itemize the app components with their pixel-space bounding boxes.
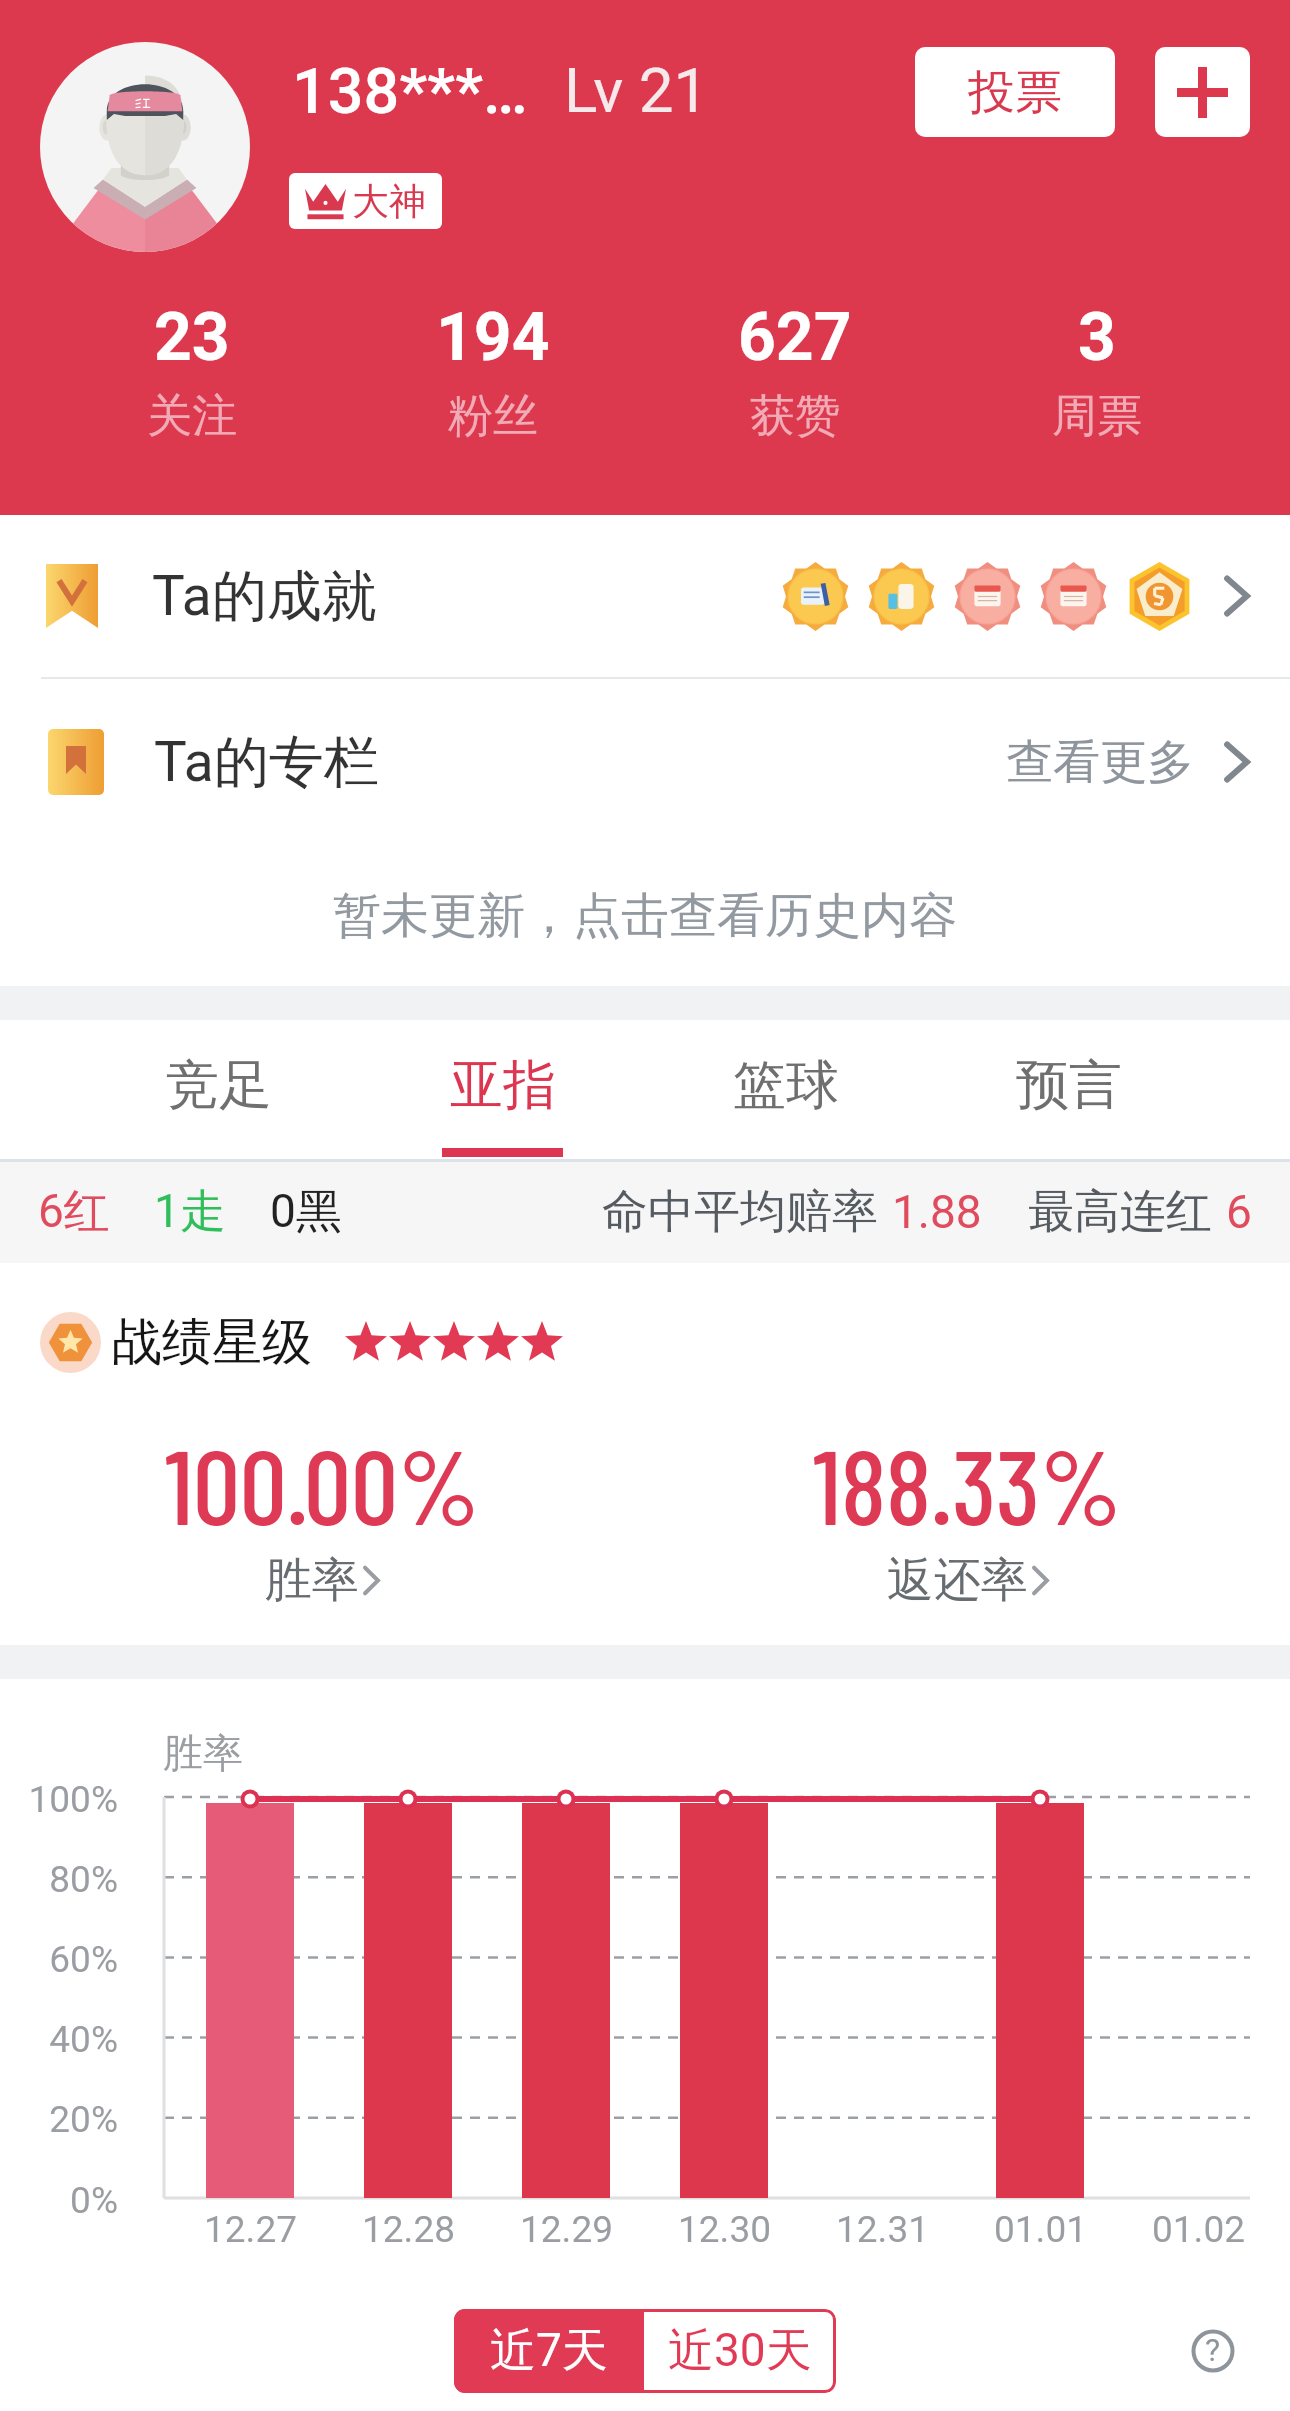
staticText: 1.88 [892,1185,982,1239]
staticText: ? [1205,2331,1221,2369]
button[interactable]: 近30天 [644,2309,836,2393]
staticText: Ta的成就 [152,562,377,631]
button[interactable]: 亚指 [361,1020,644,1160]
staticText: 最高连红 [1028,1183,1212,1241]
staticText: 194 [436,299,550,376]
staticText: 近30天 [668,2322,812,2380]
button[interactable]: 预言 [927,1020,1210,1160]
staticText: 100.00% [165,1420,480,1546]
staticText: Ta的专栏 [154,728,379,797]
staticText: 大神 [352,178,426,225]
staticText: 40% [49,2018,118,2061]
button[interactable]: 3 [946,299,1248,445]
button[interactable]: Add [1155,47,1250,137]
staticText: 60% [49,1938,118,1981]
staticText: 篮球 [733,1052,839,1119]
staticText: 12.31 [836,2208,929,2251]
staticText: 近7天 [490,2322,608,2380]
staticText: 暂未更新，点击查看历史内容 [333,886,957,946]
staticText: 亚指 [450,1052,556,1119]
staticText: 胜率 [163,1728,243,1778]
staticText: 周票 [1052,388,1142,445]
staticText: 12.27 [204,2208,297,2251]
staticText: 01.02 [1152,2208,1245,2251]
staticText: 138***… [292,55,528,129]
staticText: 战绩星级 [112,1311,312,1374]
button[interactable]: Ta的专栏 [0,679,1290,845]
staticText: 12.30 [678,2208,771,2251]
staticText: 投票 [968,63,1062,122]
staticText: 6 [1226,1185,1252,1239]
button[interactable]: 近7天 [454,2309,644,2393]
staticText: 12.28 [362,2208,455,2251]
button[interactable]: Ta的成就 [0,515,1290,677]
staticText: 命中平均赔率 [602,1183,878,1241]
button[interactable]: 战绩星级 [0,1263,1290,1400]
staticText: 胜率 [265,1551,359,1610]
staticText: 80% [49,1858,118,1901]
staticText: 3 [1078,299,1116,376]
staticText: 竞足 [166,1052,272,1119]
button[interactable]: Avatar [40,42,250,252]
button[interactable]: 大神 [289,173,442,229]
staticText: 12.29 [520,2208,613,2251]
staticText: 返还率 [887,1551,1028,1610]
staticText: Lv 21 [564,54,709,127]
staticText: 0黑 [270,1183,342,1241]
staticText: 粉丝 [448,388,538,445]
staticText: 0% [70,2179,118,2222]
staticText: 1走 [154,1183,226,1241]
button[interactable]: Help [1173,2311,1253,2391]
staticText: 关注 [147,388,237,445]
button[interactable]: 暂未更新，点击查看历史内容 [0,845,1290,986]
staticText: 查看更多 [1006,733,1194,792]
staticText: 获赞 [750,388,840,445]
staticText: 01.01 [994,2208,1087,2251]
button[interactable]: 竞足 [77,1020,361,1160]
staticText: 23 [154,299,230,376]
button[interactable]: 627 [644,299,946,445]
button[interactable]: 投票 [915,47,1115,137]
staticText: 20% [49,2098,118,2141]
staticText: 预言 [1016,1052,1122,1119]
button[interactable]: 194 [342,299,644,445]
staticText: 100% [28,1778,118,1821]
staticText: 6红 [38,1183,110,1241]
button[interactable]: 188.33% [645,1400,1290,1645]
button[interactable]: 篮球 [644,1020,927,1160]
staticText: 188.33% [813,1420,1122,1546]
button[interactable]: 23 [41,299,342,445]
staticText: 627 [738,299,852,376]
button[interactable]: 100.00% [0,1400,645,1645]
